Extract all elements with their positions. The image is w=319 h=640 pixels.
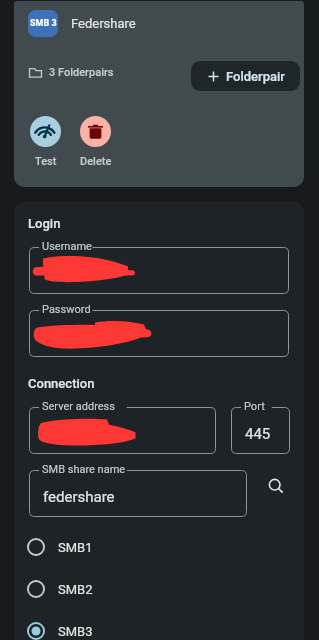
staticText: 445: [245, 425, 271, 443]
staticText: SMB share name: [42, 463, 126, 476]
staticText: Login: [28, 216, 61, 231]
staticText: SMB 3: [30, 18, 57, 29]
staticText: Password: [42, 303, 91, 316]
staticText: federshare: [43, 488, 115, 506]
staticText: SMB1: [58, 540, 93, 555]
staticText: 3 Folderpairs: [49, 66, 114, 79]
button[interactable]: SMB3: [14, 610, 304, 640]
button[interactable]: Test: [15, 116, 76, 168]
staticText: Folderpair: [226, 69, 285, 84]
staticText: Username: [42, 240, 92, 253]
staticText: Port: [244, 400, 265, 413]
button[interactable]: SMB1: [14, 526, 304, 568]
staticText: Test: [35, 155, 57, 168]
staticText: Connection: [28, 376, 95, 391]
staticText: Federshare: [71, 16, 136, 31]
staticText: SMB3: [58, 624, 93, 639]
button[interactable]: Delete: [65, 116, 126, 168]
staticText: Server address: [42, 400, 115, 413]
staticText: Delete: [80, 155, 112, 168]
button[interactable]: SMB2: [14, 568, 304, 610]
button[interactable]: Folderpair: [191, 61, 300, 91]
button[interactable]: Search: [254, 464, 300, 510]
staticText: SMB2: [58, 582, 93, 597]
